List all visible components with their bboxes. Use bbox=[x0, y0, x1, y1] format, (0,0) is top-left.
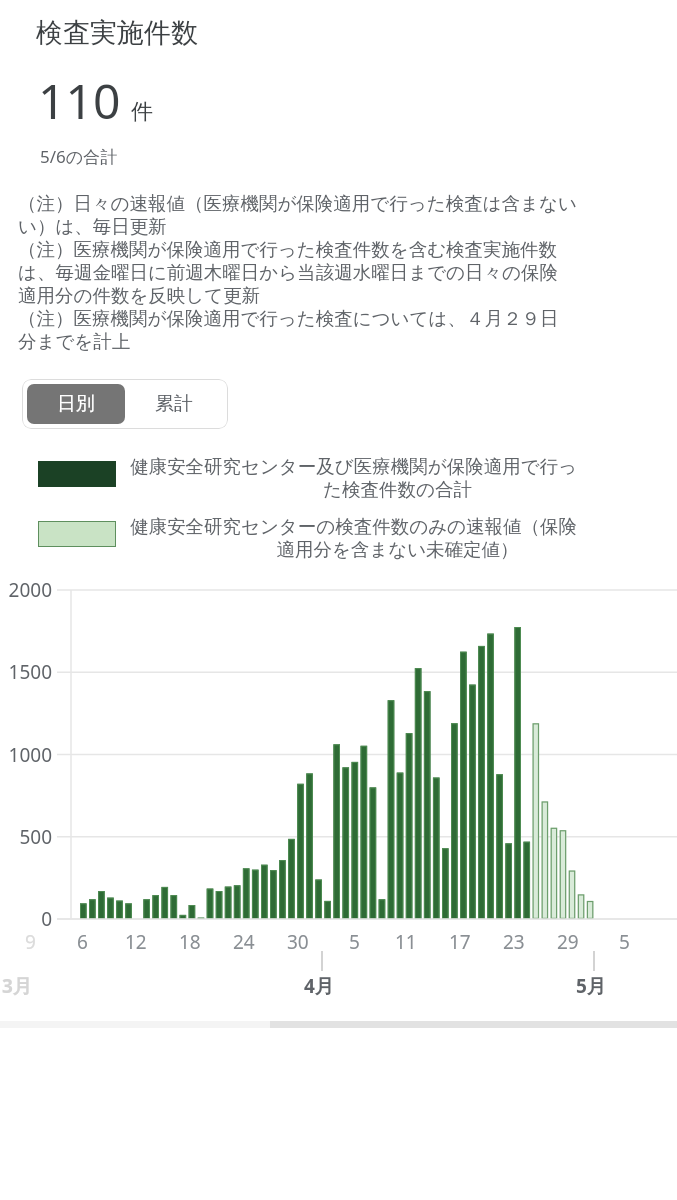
staticText: 日別 bbox=[57, 392, 95, 416]
staticText: 5 bbox=[349, 929, 360, 955]
staticText: （注）日々の速報値（医療機関が保険適用で行った検査は含まない bbox=[18, 192, 577, 215]
staticText: 適用分を含まない未確定値） bbox=[130, 538, 665, 561]
staticText: 3月 bbox=[2, 973, 32, 999]
staticText: 累計 bbox=[155, 392, 193, 416]
staticText: 30 bbox=[287, 929, 309, 955]
staticText: 23 bbox=[503, 929, 525, 955]
staticText: 17 bbox=[449, 929, 471, 955]
staticText: 6 bbox=[77, 929, 88, 955]
staticText: 件 bbox=[131, 98, 153, 126]
staticText: 健康安全研究センター及び医療機関が保険適用で行っ bbox=[130, 455, 578, 478]
staticText: 検査実施件数 bbox=[36, 16, 198, 50]
staticText: 9 bbox=[25, 929, 36, 955]
staticText: 29 bbox=[557, 929, 579, 955]
staticText: 分までを計上 bbox=[18, 330, 131, 353]
staticText: 500 bbox=[0, 824, 52, 850]
staticText: （注）医療機関が保険適用で行った検査件数を含む検査実施件数 bbox=[18, 238, 558, 261]
button[interactable]: 健康安全研究センターの検査件数のみの速報値（保険 bbox=[38, 515, 665, 561]
staticText: 12 bbox=[125, 929, 147, 955]
staticText: 5月 bbox=[576, 973, 606, 999]
staticText: た検査件数の合計 bbox=[130, 478, 665, 501]
staticText: 5/6の合計 bbox=[40, 145, 118, 168]
staticText: （注）医療機関が保険適用で行った検査については、４月２９日 bbox=[18, 307, 559, 330]
button[interactable]: 健康安全研究センター及び医療機関が保険適用で行っ bbox=[38, 455, 665, 501]
staticText: 適用分の件数を反映して更新 bbox=[18, 284, 261, 307]
staticText: は、毎週金曜日に前週木曜日から当該週水曜日までの日々の保険 bbox=[18, 261, 558, 284]
staticText: 1500 bbox=[0, 659, 52, 685]
button[interactable]: 日別 bbox=[27, 384, 125, 424]
button[interactable]: 累計 bbox=[125, 384, 223, 424]
staticText: 1000 bbox=[0, 742, 52, 768]
staticText: 4月 bbox=[304, 973, 334, 999]
staticText: 110 bbox=[38, 68, 121, 133]
staticText: 24 bbox=[233, 929, 255, 955]
staticText: 0 bbox=[0, 906, 52, 932]
staticText: 2000 bbox=[0, 577, 52, 603]
staticText: い）は、毎日更新 bbox=[18, 215, 167, 238]
staticText: 18 bbox=[179, 929, 201, 955]
staticText: 11 bbox=[395, 929, 417, 955]
staticText: 健康安全研究センターの検査件数のみの速報値（保険 bbox=[130, 515, 578, 538]
staticText: 5 bbox=[619, 929, 630, 955]
